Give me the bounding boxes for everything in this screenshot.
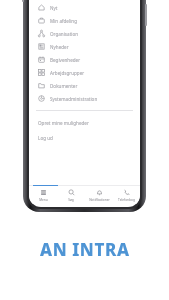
other: Home	[38, 4, 45, 11]
button[interactable]: Events	[29, 53, 140, 66]
other: Menu	[40, 189, 47, 196]
button[interactable]: Home	[29, 1, 140, 14]
other: News	[38, 43, 45, 50]
staticText: Log ud	[38, 135, 53, 141]
button[interactable]: News	[29, 40, 140, 53]
staticText: Organisation	[50, 31, 79, 37]
staticText: Opret mine muligheder	[38, 120, 89, 126]
other: Search	[68, 189, 75, 196]
button[interactable]: Search	[57, 188, 85, 203]
staticText: Min afdeling	[50, 18, 77, 24]
other: Organisation	[38, 30, 45, 37]
button[interactable]: Phone book	[113, 188, 140, 203]
staticText: Telefonbog	[118, 198, 135, 202]
staticText: Nyt	[50, 5, 58, 11]
button[interactable]: Documents	[29, 79, 140, 92]
staticText: Notifikationer	[89, 198, 110, 202]
staticText: Begivenheder	[50, 57, 81, 63]
staticText: Arbejdsgrupper	[50, 70, 85, 76]
staticText: Nyheder	[50, 44, 69, 50]
button[interactable]: My department	[29, 14, 140, 27]
button[interactable]: Notifications	[85, 188, 113, 203]
button[interactable]: Opret mine muligheder	[29, 119, 140, 127]
other: Work groups	[38, 69, 45, 76]
staticText: Systemadministration	[50, 96, 98, 102]
other: System administration	[38, 95, 45, 102]
button[interactable]: System administration	[29, 92, 140, 105]
other: Notifications	[96, 189, 103, 196]
staticText: Søg	[68, 198, 74, 202]
other: Documents	[38, 82, 45, 89]
staticText: AN INTRA	[40, 238, 130, 261]
other: Phone book	[123, 189, 130, 196]
button[interactable]: Menu	[29, 188, 57, 203]
button[interactable]: Log ud	[29, 134, 140, 142]
other: Events	[38, 56, 45, 63]
button[interactable]: Work groups	[29, 66, 140, 79]
button[interactable]: Organisation	[29, 27, 140, 40]
staticText: Dokumenter	[50, 83, 78, 89]
staticText: Menu	[39, 198, 48, 202]
other: My department	[38, 17, 45, 24]
